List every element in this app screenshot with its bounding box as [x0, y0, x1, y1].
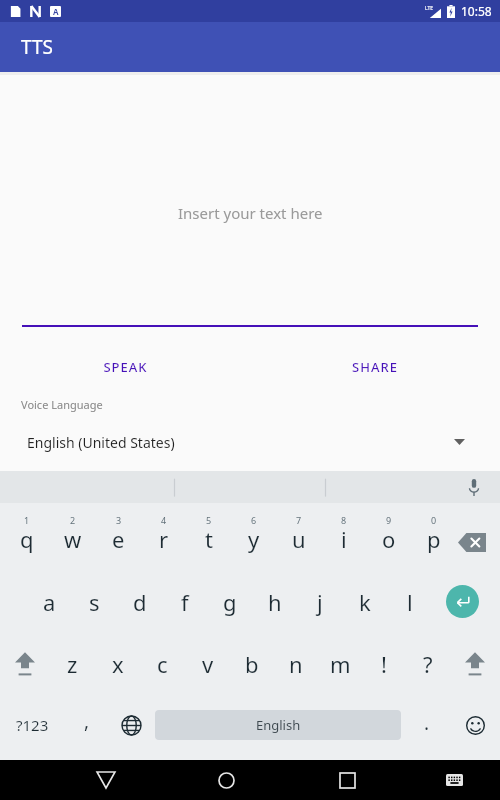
staticText: LTE [425, 5, 434, 12]
button[interactable]: s [72, 570, 117, 633]
button[interactable]: English (United States) [0, 424, 500, 460]
staticText: h [268, 587, 282, 617]
button[interactable]: Shift [450, 633, 500, 695]
staticText: y [248, 524, 260, 554]
staticText: . [424, 710, 430, 736]
button[interactable]: Backspace [452, 524, 492, 560]
staticText: 5 [206, 514, 212, 526]
button[interactable]: n [274, 633, 318, 695]
button[interactable]: j [297, 570, 342, 633]
button[interactable]: Recent apps [287, 760, 408, 800]
staticText: i [341, 524, 347, 554]
staticText: m [330, 649, 351, 679]
button[interactable]: . [404, 695, 450, 755]
staticText: SHARE [352, 358, 398, 376]
button[interactable]: z [50, 633, 95, 695]
button[interactable]: Change language [110, 695, 152, 755]
button[interactable]: a [26, 570, 72, 633]
button[interactable]: g [207, 570, 252, 633]
staticText: d [133, 587, 147, 617]
staticText: a [43, 587, 56, 617]
button[interactable]: 2 [50, 503, 96, 570]
staticText: ! [381, 649, 387, 679]
button[interactable]: 3 [96, 503, 141, 570]
staticText: x [112, 649, 124, 679]
staticText: TTS [21, 34, 53, 60]
staticText: 3 [116, 514, 122, 526]
staticText: f [181, 587, 189, 617]
button[interactable]: h [252, 570, 297, 633]
button[interactable]: 8 [321, 503, 366, 570]
button[interactable]: ?123 [0, 695, 64, 755]
staticText: v [202, 649, 214, 679]
button[interactable]: 1 [4, 503, 50, 570]
staticText: r [159, 524, 169, 554]
button[interactable]: 6 [231, 503, 276, 570]
button[interactable]: Voice input [462, 475, 486, 499]
staticText: , [84, 708, 90, 734]
button[interactable]: Enter [446, 585, 479, 618]
staticText: o [382, 524, 396, 554]
staticText: Insert your text here [178, 203, 323, 223]
staticText: ? [423, 649, 433, 679]
staticText: l [407, 587, 413, 617]
button[interactable]: c [140, 633, 185, 695]
staticText: 2 [70, 514, 76, 526]
staticText: w [64, 524, 82, 554]
staticText: t [205, 524, 213, 554]
button[interactable]: SPEAK [0, 350, 250, 384]
button[interactable]: k [342, 570, 387, 633]
staticText: 0 [431, 514, 437, 526]
button[interactable]: l [387, 570, 432, 633]
staticText: English (United States) [27, 433, 454, 452]
button[interactable]: Emoji [450, 695, 500, 755]
staticText: k [359, 587, 371, 617]
button[interactable]: 7 [276, 503, 321, 570]
button[interactable]: 5 [186, 503, 231, 570]
button[interactable]: d [117, 570, 162, 633]
button[interactable]: 4 [141, 503, 186, 570]
button[interactable]: English [155, 710, 401, 740]
button[interactable]: Back [46, 760, 166, 800]
staticText: u [292, 524, 306, 554]
staticText: SPEAK [103, 358, 148, 376]
staticText: g [223, 587, 237, 617]
staticText: 7 [296, 514, 302, 526]
staticText: q [20, 524, 34, 554]
staticText: z [67, 649, 78, 679]
button[interactable]: Shift [0, 633, 50, 695]
staticText: 4 [161, 514, 167, 526]
staticText: Voice Language [21, 397, 103, 412]
button[interactable]: SHARE [250, 350, 500, 384]
button[interactable]: m [318, 633, 362, 695]
staticText: j [317, 587, 323, 617]
button[interactable]: f [162, 570, 207, 633]
staticText: A [53, 6, 59, 17]
staticText: n [289, 649, 303, 679]
button[interactable]: v [185, 633, 230, 695]
button[interactable]: Home [166, 760, 287, 800]
button[interactable]: x [95, 633, 140, 695]
button[interactable]: ? [406, 633, 450, 695]
staticText: e [112, 524, 125, 554]
button[interactable]: b [230, 633, 274, 695]
button[interactable]: , [64, 695, 110, 755]
staticText: s [89, 587, 100, 617]
staticText: 8 [341, 514, 347, 526]
staticText: English [256, 716, 301, 734]
staticText: ?123 [16, 715, 49, 735]
button[interactable]: 0 [411, 503, 456, 570]
staticText: 6 [251, 514, 257, 526]
staticText: p [427, 524, 441, 554]
staticText: c [157, 649, 168, 679]
button[interactable]: Hide keyboard [408, 760, 500, 800]
staticText: b [245, 649, 259, 679]
button[interactable]: ! [362, 633, 406, 695]
staticText: 9 [386, 514, 392, 526]
button[interactable]: 9 [366, 503, 411, 570]
staticText: 10:58 [461, 3, 492, 19]
staticText: 1 [24, 514, 30, 526]
